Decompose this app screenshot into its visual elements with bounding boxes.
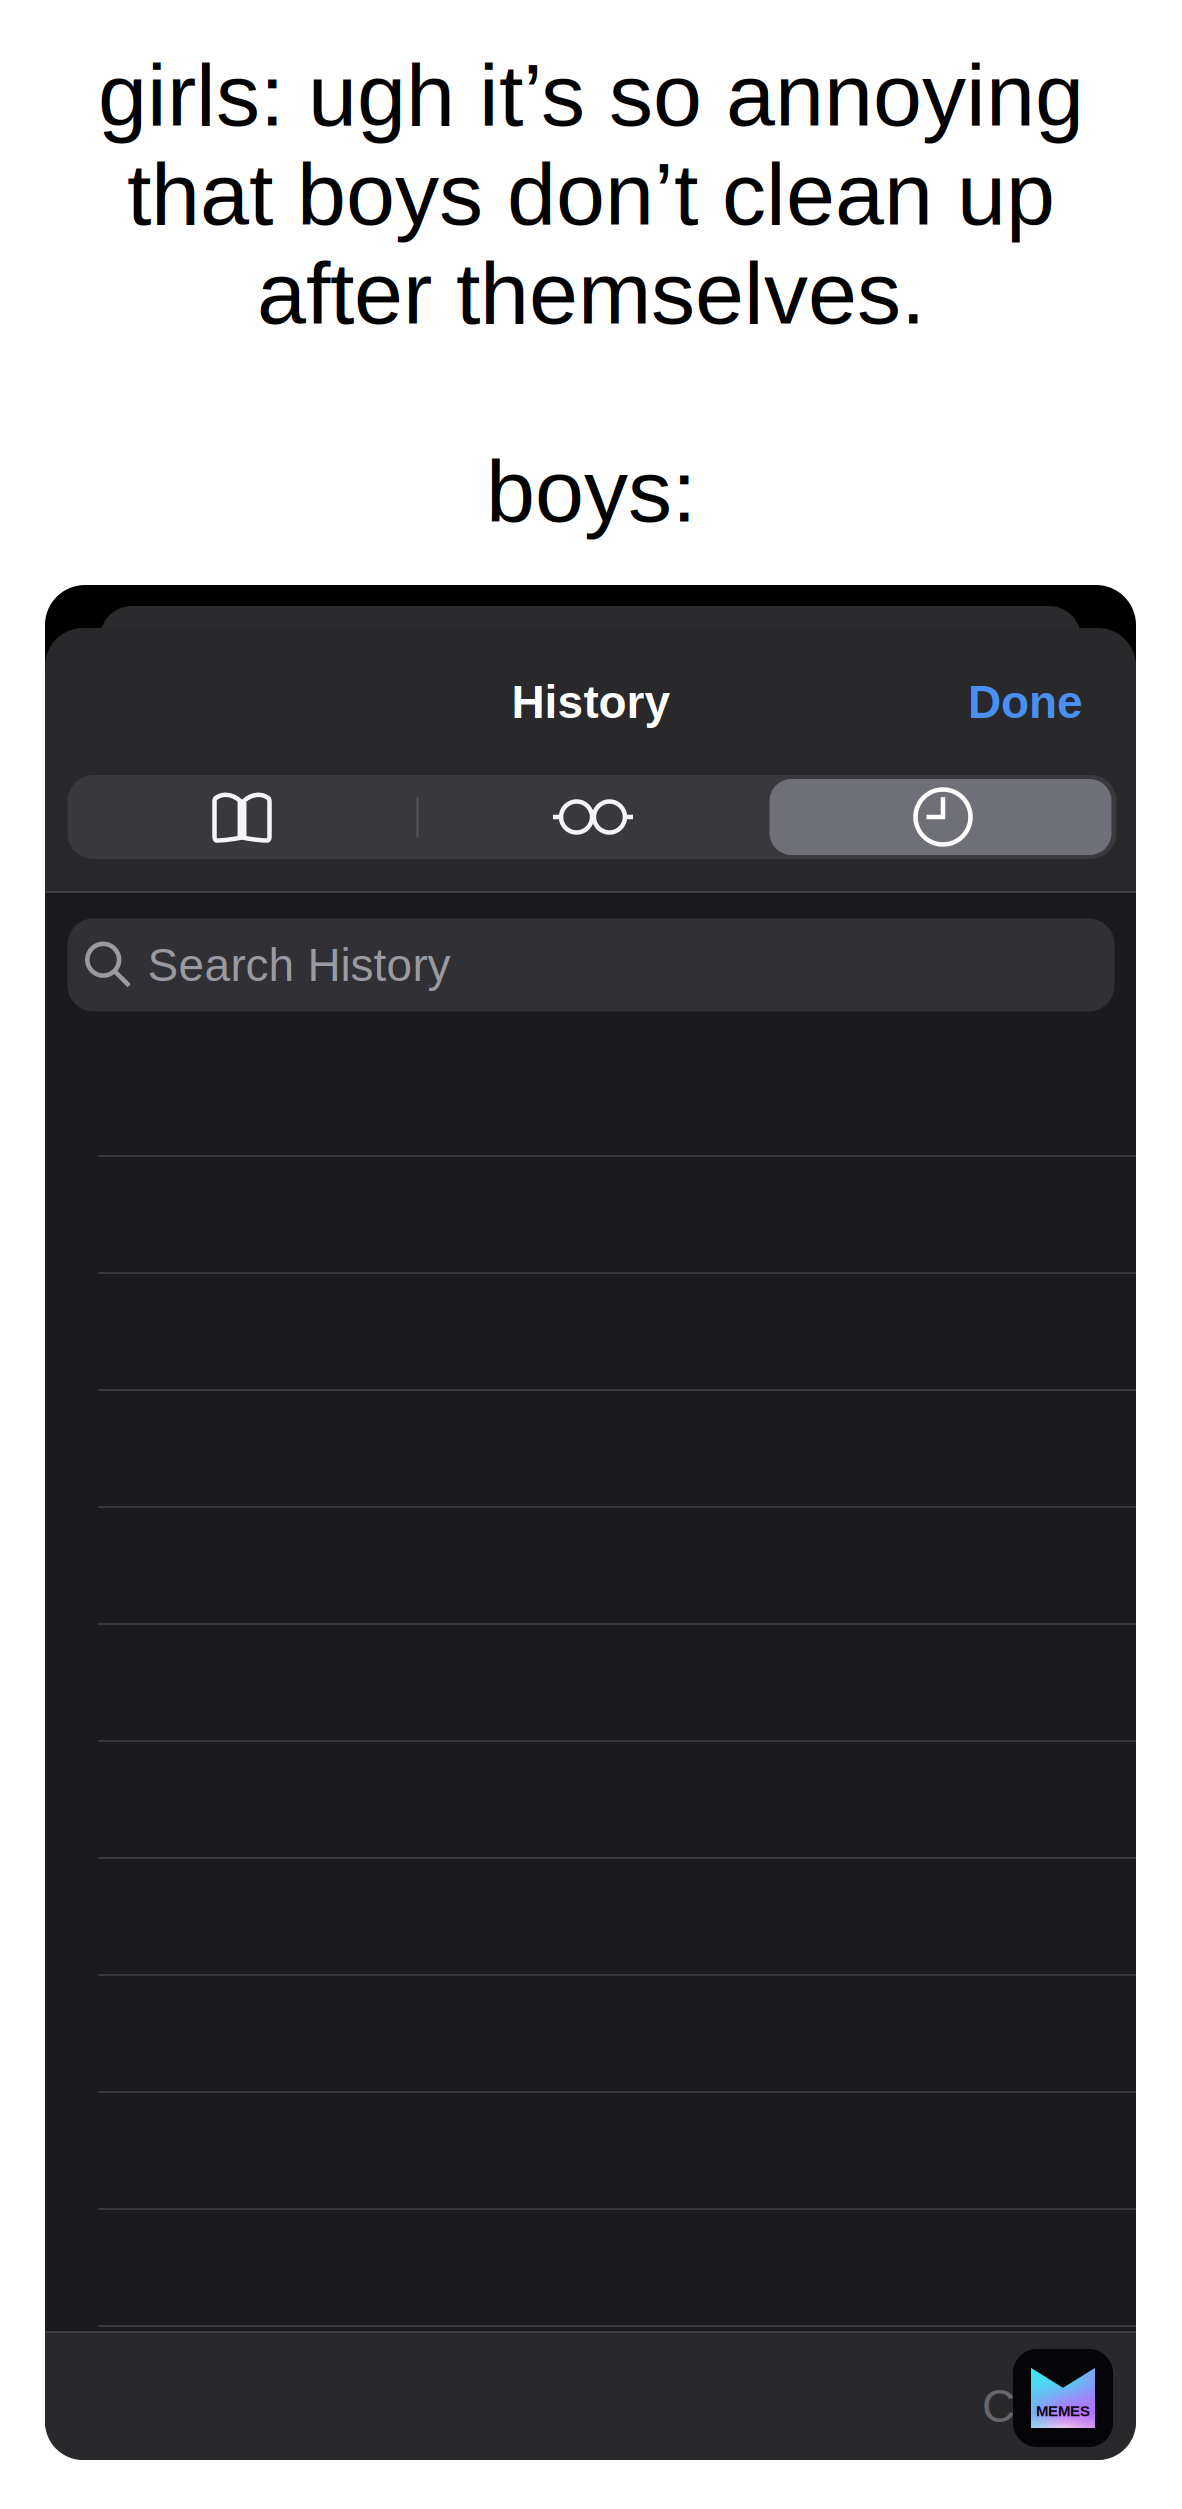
button[interactable]: Search History bbox=[67, 918, 1114, 1011]
button[interactable]: History entry bbox=[45, 2210, 1136, 2327]
button[interactable]: History entry bbox=[45, 1157, 1136, 1274]
staticText: that boys don’t clean up bbox=[127, 145, 1055, 243]
staticText: after themselves. bbox=[257, 244, 925, 342]
button[interactable]: History entry bbox=[45, 1391, 1136, 1508]
button[interactable]: Done bbox=[933, 662, 1083, 742]
button[interactable]: History entry bbox=[45, 1859, 1136, 1976]
staticText: Clear bbox=[982, 2380, 1092, 2432]
button[interactable]: History entry bbox=[45, 1508, 1136, 1625]
staticText: Search History bbox=[147, 939, 450, 991]
button[interactable]: History entry bbox=[45, 1274, 1136, 1391]
button[interactable]: History entry bbox=[45, 2093, 1136, 2210]
button[interactable]: Clear bbox=[982, 2360, 1182, 2452]
staticText: girls: ugh it’s so annoying bbox=[98, 46, 1084, 144]
staticText: boys: bbox=[486, 442, 696, 540]
button[interactable]: History entry bbox=[45, 1625, 1136, 1742]
button[interactable]: Bookmarks bbox=[67, 775, 416, 859]
button[interactable]: History entry bbox=[45, 1742, 1136, 1859]
staticText: History bbox=[511, 676, 670, 728]
button[interactable]: Reading List bbox=[416, 775, 769, 859]
button[interactable]: History entry bbox=[45, 1976, 1136, 2093]
button[interactable]: History entry bbox=[45, 1040, 1136, 1157]
staticText: MEMES bbox=[1036, 2403, 1090, 2419]
staticText: Done bbox=[968, 676, 1083, 728]
button[interactable]: History bbox=[769, 775, 1116, 859]
